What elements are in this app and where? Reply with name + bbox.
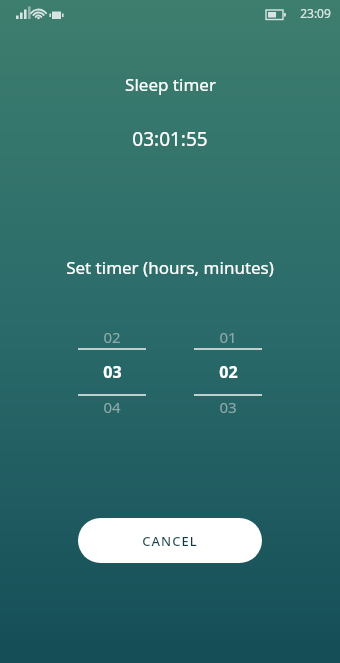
staticText: 03 — [219, 397, 237, 417]
staticText: CANCEL — [142, 532, 198, 550]
staticText: Set timer (hours, minutes) — [66, 256, 274, 279]
staticText: 01 — [219, 327, 237, 347]
staticText: 03 — [103, 361, 122, 383]
staticText: Sleep timer — [125, 73, 216, 96]
staticText: 03:01:55 — [132, 126, 208, 152]
staticText: 02 — [103, 327, 121, 347]
button[interactable]: CANCEL — [78, 518, 262, 563]
staticText: 04 — [103, 397, 121, 417]
staticText: 23:09 — [300, 5, 331, 21]
staticText: 02 — [219, 361, 238, 383]
button[interactable]: Minutes — [194, 326, 262, 418]
button[interactable]: Hours — [78, 326, 146, 418]
